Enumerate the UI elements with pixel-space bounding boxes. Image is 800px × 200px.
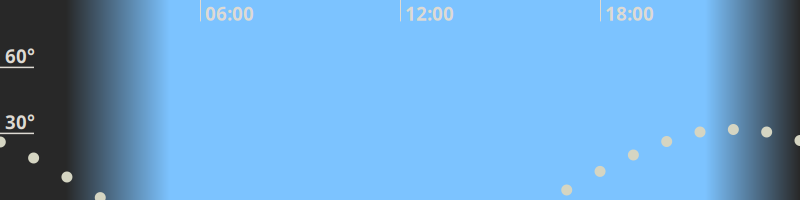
staticText: 06:00 (205, 1, 254, 26)
staticText: 12:00 (405, 1, 454, 26)
staticText: 18:00 (605, 1, 654, 26)
staticText: 30° (5, 110, 35, 134)
staticText: 60° (5, 44, 35, 68)
